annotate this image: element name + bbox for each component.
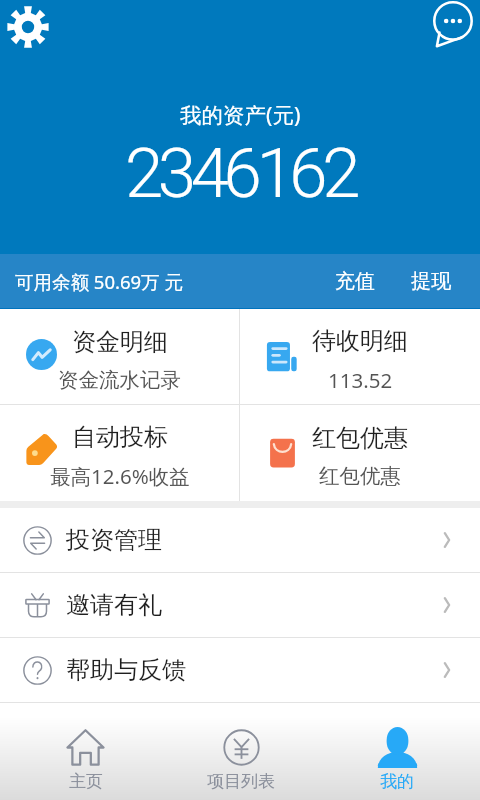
staticText: 113.52 xyxy=(328,366,393,394)
button[interactable]: 我的 xyxy=(319,717,475,800)
button[interactable]: 帮助与反馈 xyxy=(0,638,480,702)
button[interactable]: 投资管理 xyxy=(0,508,480,572)
button[interactable]: 资金明细 xyxy=(0,309,239,404)
staticText: 红包优惠 xyxy=(319,463,401,489)
staticText: 邀请有礼 xyxy=(66,590,162,620)
staticText: 资金明细 xyxy=(72,327,168,357)
button[interactable]: 红包优惠 xyxy=(240,405,480,501)
staticText: 提现 xyxy=(411,269,451,294)
staticText: 我的 xyxy=(380,771,414,792)
staticText: 项目列表 xyxy=(207,771,275,792)
button[interactable]: 充值 xyxy=(321,260,389,303)
staticText: 我的资产(元) xyxy=(180,100,301,129)
staticText: 资金流水记录 xyxy=(58,367,181,393)
button[interactable]: Settings xyxy=(2,1,54,53)
staticText: 待收明细 xyxy=(312,326,408,356)
staticText: 可用余额 50.69万 元 xyxy=(15,269,183,294)
staticText: 红包优惠 xyxy=(312,423,408,453)
button[interactable]: Messages xyxy=(425,0,477,52)
button[interactable]: 提现 xyxy=(397,260,465,303)
button[interactable]: 主页 xyxy=(8,717,163,800)
staticText: 充值 xyxy=(335,269,375,294)
staticText: 帮助与反馈 xyxy=(66,655,186,685)
button[interactable]: 自动投标 xyxy=(0,405,239,501)
button[interactable]: 项目列表 xyxy=(163,717,319,800)
staticText: 自动投标 xyxy=(72,422,168,452)
staticText: 主页 xyxy=(69,771,103,792)
button[interactable]: 待收明细 xyxy=(240,309,480,404)
staticText: 2346162 xyxy=(125,133,356,214)
button[interactable]: 邀请有礼 xyxy=(0,573,480,637)
staticText: 投资管理 xyxy=(66,525,162,555)
staticText: 最高12.6%收益 xyxy=(50,462,190,490)
